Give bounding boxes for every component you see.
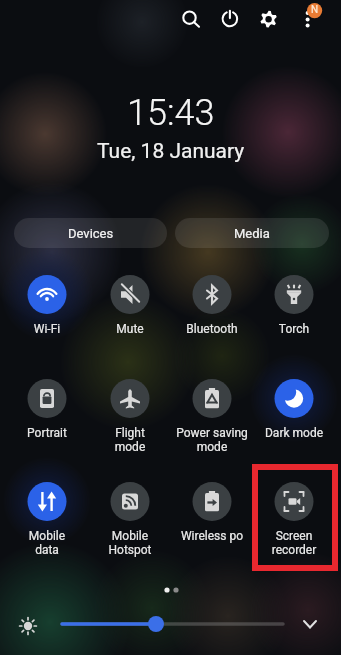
- button[interactable]: Mobile Hotspot: [89, 479, 171, 551]
- button[interactable]: Dark mode: [253, 376, 335, 448]
- staticText: Wireless po: [171, 529, 253, 543]
- staticText: N: [311, 4, 319, 16]
- staticText: Portrait: [6, 426, 88, 440]
- button[interactable]: Mobile data: [6, 479, 88, 551]
- button[interactable]: Search: [176, 4, 204, 32]
- button[interactable]: Media: [175, 218, 329, 248]
- staticText: Tue, 18 January: [97, 139, 245, 164]
- staticText: Dark mode: [253, 426, 335, 440]
- button[interactable]: Mute: [89, 272, 171, 344]
- staticText: Mute: [89, 322, 171, 336]
- button[interactable]: Screen recorder: [253, 479, 335, 551]
- staticText: Mobile data: [6, 529, 88, 557]
- staticText: Wi-Fi: [6, 322, 88, 336]
- button[interactable]: Flight mode: [89, 376, 171, 448]
- staticText: Torch: [253, 322, 335, 336]
- staticText: Bluetooth: [171, 322, 253, 336]
- button[interactable]: Settings: [255, 4, 283, 32]
- staticText: Power saving mode: [171, 426, 253, 454]
- button[interactable]: Power saving mode: [171, 376, 253, 448]
- button[interactable]: Wireless po: [171, 479, 253, 551]
- staticText: Mobile Hotspot: [89, 529, 171, 557]
- button[interactable]: Portrait: [6, 376, 88, 448]
- staticText: Devices: [68, 226, 114, 241]
- button[interactable]: Devices: [14, 218, 167, 248]
- staticText: Media: [234, 226, 270, 241]
- button[interactable]: Torch: [253, 272, 335, 344]
- button[interactable]: Power: [216, 4, 244, 32]
- button[interactable]: Bluetooth: [171, 272, 253, 344]
- staticText: 15:43: [127, 92, 215, 134]
- button[interactable]: More options: [298, 2, 320, 24]
- button[interactable]: Wi-Fi: [6, 272, 88, 344]
- staticText: Flight mode: [89, 426, 171, 454]
- staticText: Screen recorder: [253, 529, 335, 557]
